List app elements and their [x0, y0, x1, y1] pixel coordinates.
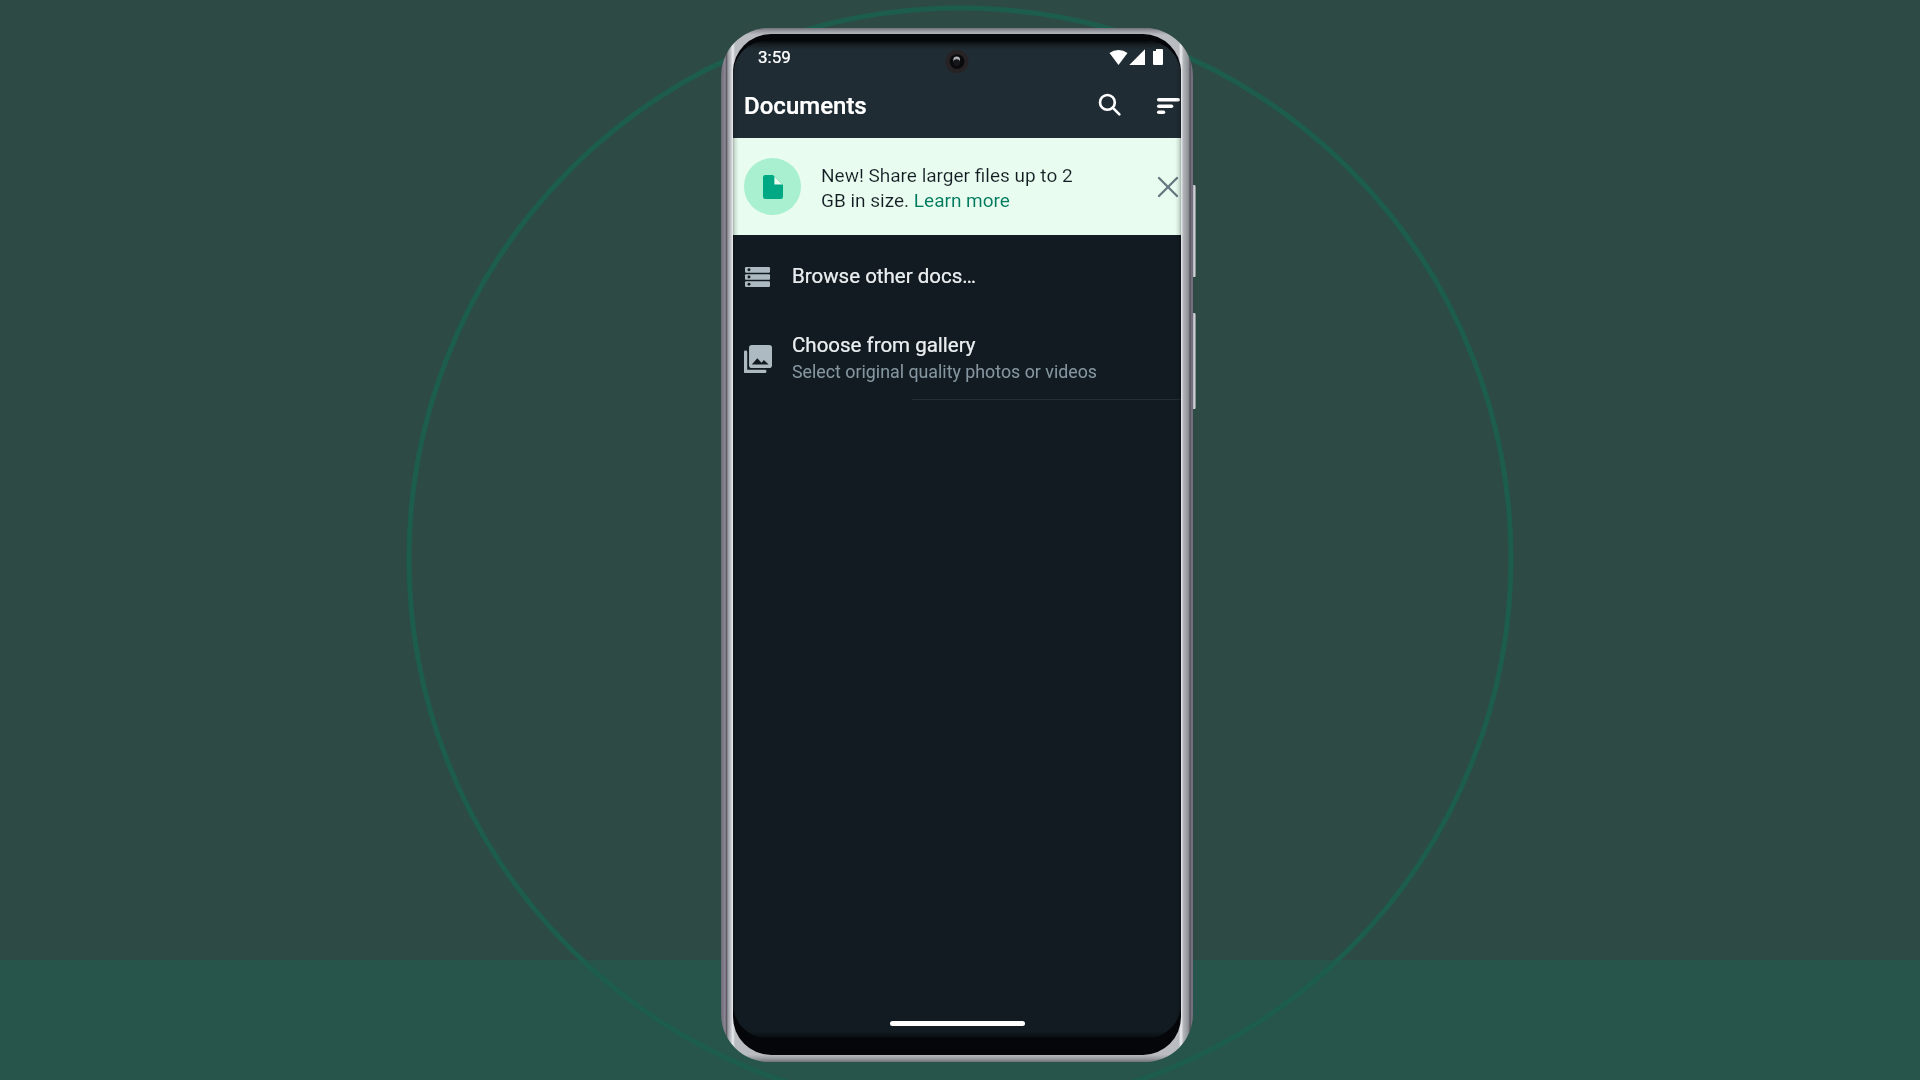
staticText: Documents	[744, 92, 867, 120]
button[interactable]: Browse other docs…	[733, 235, 1181, 318]
button[interactable]: Dismiss	[1148, 167, 1181, 207]
button[interactable]: Choose from gallery	[733, 318, 1181, 399]
button[interactable]: New! Share larger files up to 2 GB in si…	[733, 138, 1181, 235]
staticText: 3:59	[758, 47, 791, 67]
staticText: Select original quality photos or videos	[792, 361, 1098, 382]
button[interactable]: Search	[1085, 83, 1133, 131]
button[interactable]: Sort	[1144, 83, 1181, 131]
staticText: New! Share larger files up to 2 GB in si…	[821, 164, 1087, 211]
staticText: Choose from gallery	[792, 333, 976, 357]
staticText: Browse other docs…	[792, 264, 977, 288]
